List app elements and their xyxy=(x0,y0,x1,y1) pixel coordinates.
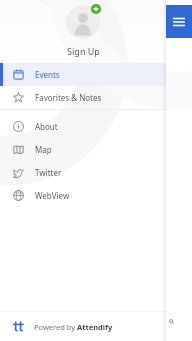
button[interactable]: Profile picture xyxy=(66,5,100,39)
staticText: WebView xyxy=(35,190,70,201)
staticText: Map xyxy=(35,144,52,155)
staticText: Sign Up xyxy=(67,45,100,57)
button[interactable]: Powered by Attendify xyxy=(0,312,166,341)
staticText: About xyxy=(35,121,58,132)
button[interactable]: Favorites & Notes xyxy=(0,86,166,109)
button[interactable]: Events xyxy=(0,63,166,86)
button[interactable]: Open navigation menu xyxy=(166,5,192,38)
staticText: Twitter xyxy=(35,167,62,178)
button[interactable]: Sign Up xyxy=(61,44,106,58)
staticText: Powered by Attendify xyxy=(34,322,113,332)
button[interactable]: About xyxy=(0,115,166,138)
button[interactable]: WebView xyxy=(0,184,166,207)
button[interactable]: Twitter xyxy=(0,161,166,184)
button[interactable]: Search xyxy=(166,316,190,327)
button[interactable]: Map xyxy=(0,138,166,161)
staticText: Favorites & Notes xyxy=(35,92,102,103)
staticText: Events xyxy=(35,69,60,80)
